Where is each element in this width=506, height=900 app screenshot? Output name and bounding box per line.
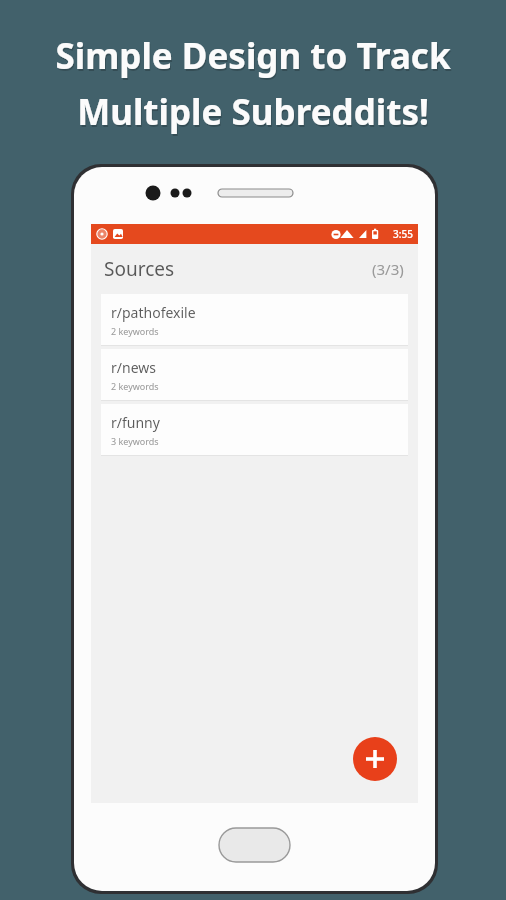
staticText: 3 keywords	[111, 435, 159, 447]
staticText: 2 keywords	[111, 325, 159, 337]
staticText: Simple Design to Track	[56, 34, 452, 82]
staticText: r/pathofexile	[111, 303, 196, 322]
button[interactable]: Add source	[353, 737, 397, 781]
staticText: Simple Design to Track	[55, 32, 451, 80]
staticText: Multiple Subreddits!	[77, 88, 429, 136]
staticText: (3/3)	[372, 259, 404, 279]
staticText: Multiple Subreddits!	[78, 90, 430, 138]
staticText: r/news	[111, 358, 156, 377]
staticText: Sources	[104, 256, 175, 282]
button[interactable]: r/pathofexile	[101, 294, 408, 346]
button[interactable]: r/news	[101, 349, 408, 401]
staticText: 3:55	[393, 227, 413, 241]
staticText: r/funny	[111, 413, 160, 432]
button[interactable]: r/funny	[101, 404, 408, 456]
staticText: 2 keywords	[111, 380, 159, 392]
